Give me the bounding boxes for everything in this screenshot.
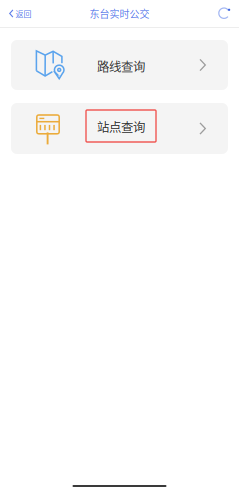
staticText: 站点查询 (97, 117, 145, 135)
button[interactable]: 路线查询 (11, 40, 228, 90)
button[interactable]: 站点查询 (11, 103, 228, 154)
staticText: 路线查询 (97, 57, 145, 75)
staticText: 返回 (16, 8, 32, 19)
button[interactable]: 返回 (0, 0, 42, 26)
button[interactable]: Refresh (218, 0, 239, 26)
staticText: 东台实时公交 (89, 6, 149, 21)
